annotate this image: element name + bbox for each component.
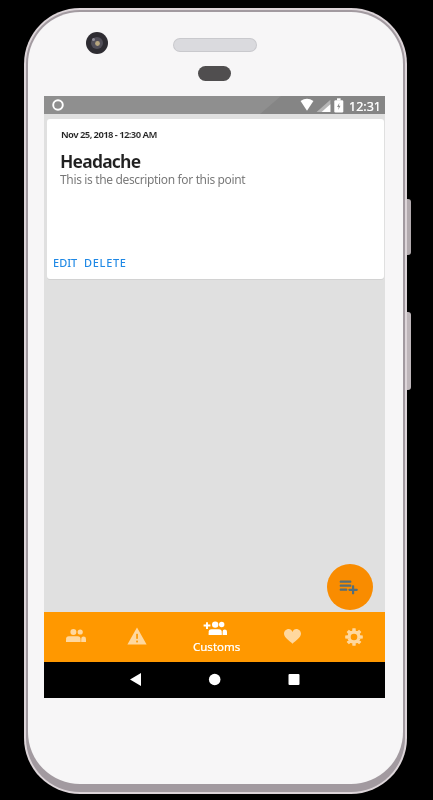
button[interactable] [44, 612, 106, 662]
staticText: Headache [60, 149, 141, 173]
staticText: Nov 25, 2018 - 12:30 AM [61, 128, 157, 141]
button[interactable]: EDIT [49, 254, 82, 271]
staticText: 12:31 [349, 98, 381, 115]
button[interactable]: DELETE [82, 254, 132, 271]
staticText: EDIT [53, 255, 78, 270]
button[interactable] [327, 564, 373, 610]
button[interactable] [263, 662, 315, 698]
button[interactable] [189, 662, 241, 698]
button[interactable] [175, 612, 253, 662]
staticText: This is the description for this point [60, 171, 246, 187]
button[interactable] [253, 612, 323, 662]
staticText: Customs [193, 639, 241, 655]
staticText: DELETE [84, 255, 127, 270]
button[interactable] [110, 662, 162, 698]
button[interactable] [106, 612, 175, 662]
button[interactable] [323, 612, 385, 662]
